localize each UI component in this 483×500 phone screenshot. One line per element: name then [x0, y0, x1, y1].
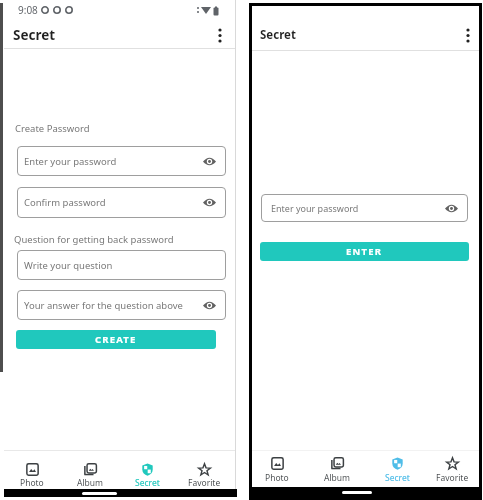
staticText: Enter your password: [24, 155, 117, 168]
button[interactable]: Your answer for the question above: [17, 290, 226, 320]
staticText: Create Password: [15, 122, 90, 135]
button[interactable]: Album: [311, 453, 363, 483]
button[interactable]: Enter your password: [261, 194, 468, 222]
button[interactable]: Secret: [121, 459, 173, 489]
button[interactable]: Album: [64, 459, 116, 489]
staticText: ENTER: [346, 245, 383, 258]
staticText: Favorite: [436, 472, 469, 484]
staticText: Question for getting back password: [14, 233, 174, 246]
staticText: Secret: [385, 472, 410, 484]
staticText: Your answer for the question above: [24, 299, 183, 312]
button[interactable]: Secret: [371, 453, 423, 483]
staticText: Write your question: [24, 259, 113, 272]
button[interactable]: Photo: [251, 453, 303, 483]
button[interactable]: Write your question: [17, 250, 226, 280]
button[interactable]: [214, 28, 226, 44]
button[interactable]: Enter your password: [17, 146, 226, 176]
staticText: Secret: [135, 477, 160, 489]
staticText: Secret: [260, 27, 296, 43]
staticText: Photo: [20, 477, 44, 489]
button[interactable]: Favorite: [426, 453, 478, 483]
staticText: 9:08: [18, 3, 38, 17]
staticText: Confirm password: [24, 196, 106, 209]
staticText: Album: [77, 477, 104, 489]
button[interactable]: Favorite: [178, 459, 230, 489]
button[interactable]: Photo: [6, 459, 58, 489]
button[interactable]: Confirm password: [17, 187, 226, 218]
staticText: Photo: [265, 472, 289, 484]
staticText: CREATE: [95, 333, 137, 346]
staticText: Album: [324, 472, 351, 484]
button[interactable]: CREATE: [16, 330, 216, 349]
staticText: Favorite: [188, 477, 221, 489]
staticText: Secret: [13, 26, 56, 44]
button[interactable]: ENTER: [260, 242, 469, 261]
staticText: Enter your password: [271, 202, 359, 214]
button[interactable]: [462, 28, 474, 44]
